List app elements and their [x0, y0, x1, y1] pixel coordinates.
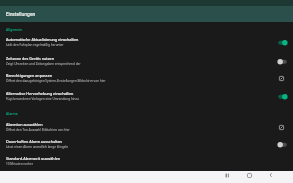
staticText: Alarmton auswählen — [6, 122, 43, 127]
button[interactable]: Öffnen — [276, 121, 289, 133]
staticText: Automatische Aktualisierung einschalten — [6, 37, 79, 42]
button[interactable]: Berechtigungen anpassen — [0, 69, 293, 87]
button[interactable]: Alarmton auswählen — [0, 118, 293, 135]
staticText: Zeitzone des Geräts nutzen — [6, 56, 54, 61]
staticText: Alternative Hervorhebung einschalten — [6, 91, 74, 96]
button[interactable]: Zurück — [260, 171, 282, 183]
button[interactable]: Automatische Aktualisierung einschalten — [0, 33, 293, 51]
staticText: Lässt einen Alarm unendlich lange klinge… — [6, 145, 69, 149]
button[interactable]: Ausgeschaltet — [276, 138, 289, 150]
staticText: 10 Minuten vorher — [6, 162, 34, 166]
staticText: Fügt besonderen Vorlagen eine Umrandung … — [6, 97, 79, 101]
staticText: Zeigt Uhrzeiten und Zeitangaben entsprec… — [6, 62, 81, 66]
button[interactable]: Einstellungen — [0, 6, 293, 22]
staticText: Standard-Alarmzeit auswählen — [6, 156, 61, 161]
button[interactable]: Dauerhaften Alarm ausschalten — [0, 135, 293, 152]
button[interactable]: Alternative Hervorhebung einschalten — [0, 87, 293, 105]
button[interactable]: Eingeschaltet — [276, 90, 289, 102]
staticText: Öffnet den Ton-Auswahl Bildschirm von hi… — [6, 128, 70, 132]
staticText: Einstellungen — [6, 11, 36, 17]
button[interactable]: Standard-Alarmzeit auswählen — [0, 152, 293, 169]
staticText: Dauerhaften Alarm ausschalten — [6, 139, 62, 144]
button[interactable]: Eingeschaltet — [276, 36, 289, 48]
staticText: Alarme — [6, 111, 18, 116]
staticText: Lädt den Fahrplan regelmäßig herunter — [6, 43, 64, 47]
staticText: Öffnet den dazugehörigen System-Einstell… — [6, 79, 106, 83]
button[interactable]: Startbildschirm — [238, 171, 260, 183]
staticText: Allgemein — [6, 27, 23, 32]
button[interactable]: Öffnen — [276, 72, 289, 84]
button[interactable]: Ausgeschaltet — [276, 55, 289, 67]
staticText: Berechtigungen anpassen — [6, 73, 53, 78]
button[interactable]: Letzte Apps — [216, 171, 238, 183]
button[interactable]: Zeitzone des Geräts nutzen — [0, 52, 293, 70]
